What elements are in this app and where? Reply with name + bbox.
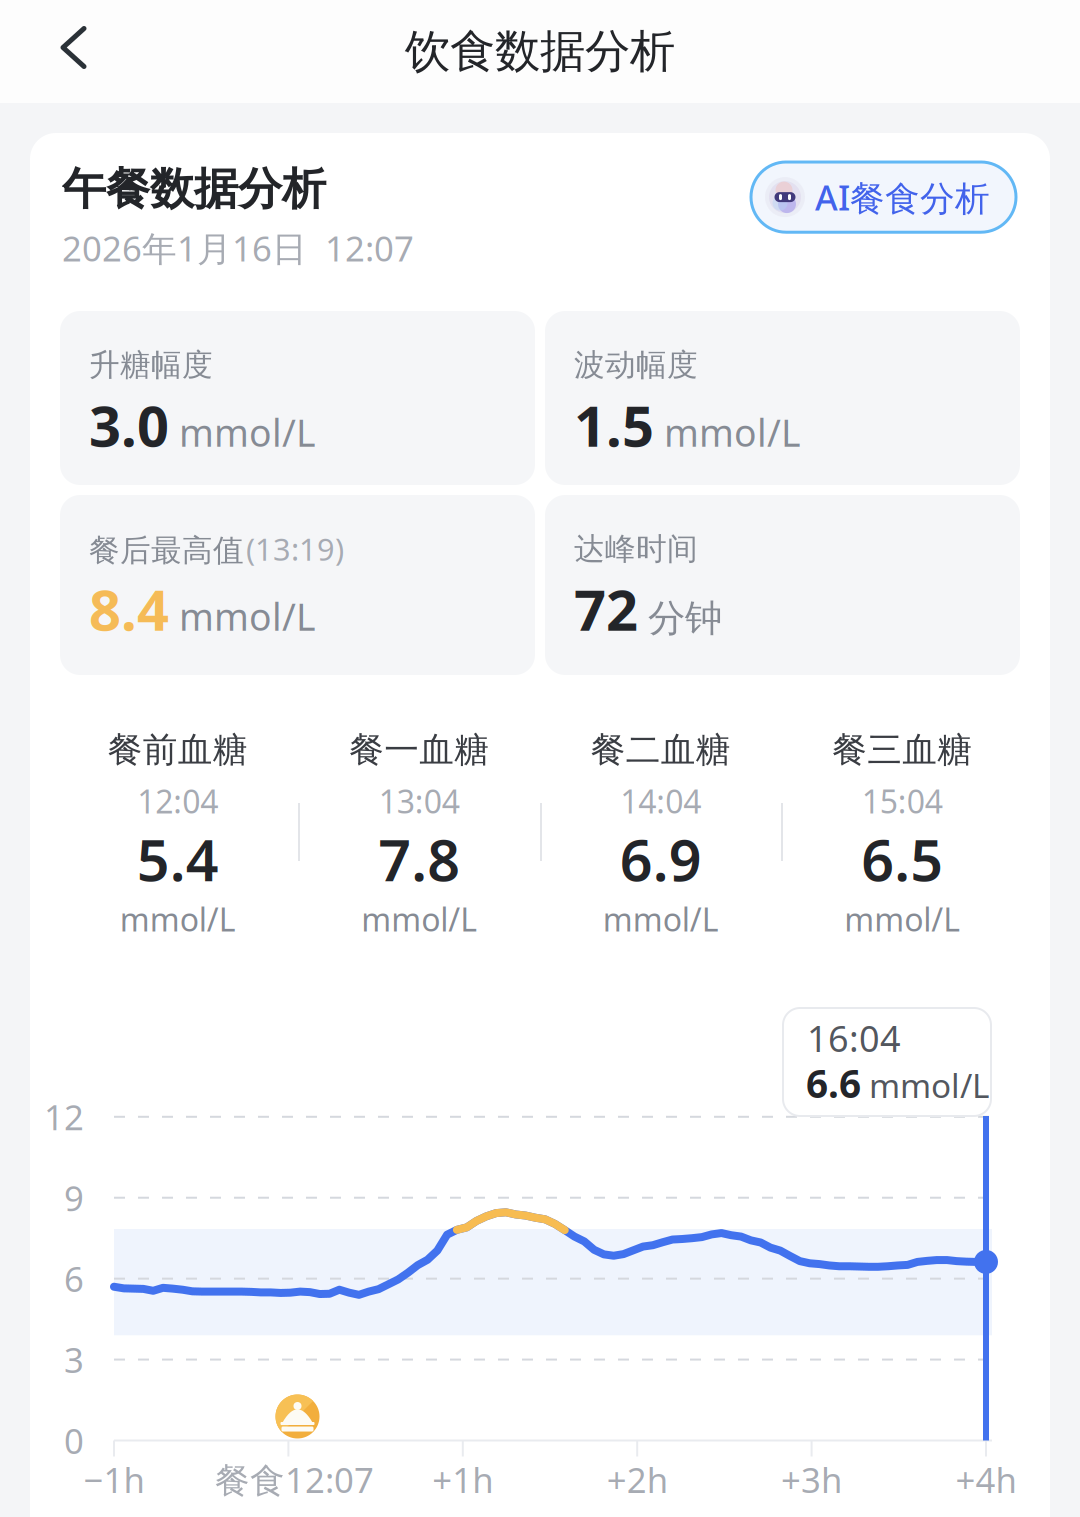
staticText: 3 (64, 1337, 84, 1383)
staticText: mmol/L (664, 407, 801, 457)
staticText: 7.8 (378, 821, 460, 897)
staticText: 12:04 (137, 780, 218, 822)
button[interactable]: 返回 (0, 1, 124, 101)
staticText: 15:04 (862, 780, 943, 822)
staticText: 2026年1月16日 12:07 (62, 225, 414, 271)
staticText: 9 (64, 1175, 84, 1221)
staticText: 餐二血糖 (591, 729, 731, 771)
staticText: mmol/L (179, 407, 316, 457)
staticText: 达峰时间 (574, 530, 698, 568)
staticText: 饮食数据分析 (405, 24, 675, 79)
staticText: 13:04 (379, 780, 460, 822)
staticText: 14:04 (620, 780, 701, 822)
staticText: 1.5 (574, 388, 654, 462)
staticText: 72 (574, 572, 638, 646)
staticText: 6 (64, 1256, 84, 1302)
staticText: mmol/L (869, 1063, 989, 1107)
staticText: 分钟 (648, 595, 722, 641)
staticText: AI餐食分析 (815, 174, 990, 220)
staticText: 6.6 (806, 1057, 861, 1109)
staticText: 餐三血糖 (832, 729, 972, 771)
staticText: 餐前血糖 (108, 729, 248, 771)
staticText: 餐后最高值 (89, 532, 244, 569)
staticText: mmol/L (603, 898, 719, 940)
staticText: +3h (781, 1456, 842, 1502)
staticText: 6.5 (861, 821, 943, 897)
button[interactable]: AI餐食分析 (751, 162, 1016, 232)
staticText: 升糖幅度 (89, 346, 213, 384)
staticText: +2h (607, 1456, 668, 1502)
staticText: 餐食12:07 (215, 1456, 374, 1502)
staticText: 12 (44, 1094, 84, 1140)
staticText: mmol/L (179, 591, 316, 641)
staticText: 16:04 (807, 1014, 901, 1062)
staticText: (13:19) (246, 529, 344, 569)
staticText: −1h (83, 1456, 144, 1502)
staticText: 8.4 (89, 572, 169, 646)
staticText: 5.4 (137, 821, 219, 897)
staticText: +4h (955, 1456, 1016, 1502)
staticText: +1h (432, 1456, 493, 1502)
staticText: 3.0 (89, 388, 169, 462)
staticText: 午餐数据分析 (62, 162, 326, 216)
staticText: 6.9 (620, 821, 702, 897)
staticText: mmol/L (844, 898, 960, 940)
staticText: 0 (64, 1417, 84, 1463)
staticText: mmol/L (361, 898, 477, 940)
staticText: 餐一血糖 (349, 729, 489, 771)
staticText: mmol/L (120, 898, 236, 940)
staticText: 波动幅度 (574, 346, 698, 384)
